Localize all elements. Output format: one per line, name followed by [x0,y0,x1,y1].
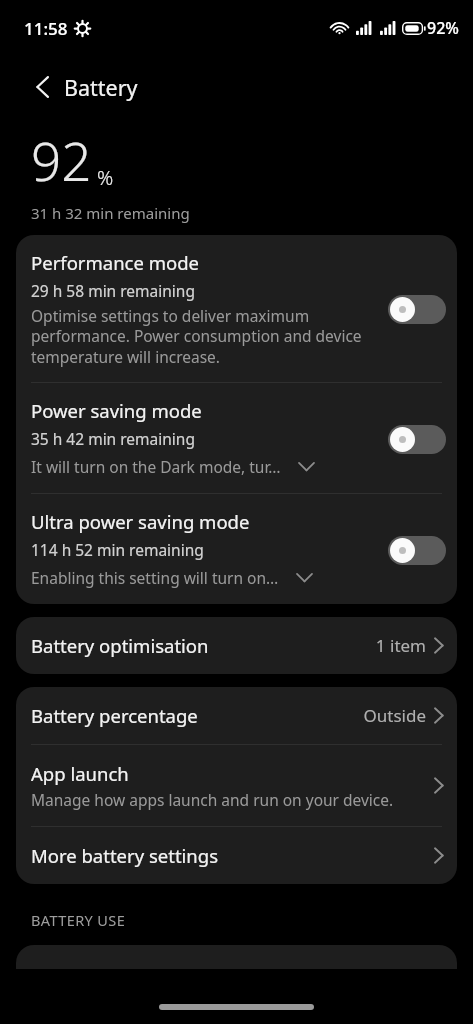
staticText: 92% [427,17,459,39]
staticText: 35 h 42 min remaining [31,428,195,449]
button[interactable]: Expand [293,453,319,479]
staticText: BATTERY USE [31,910,126,930]
staticText: Enabling this setting will turn on… [31,567,279,588]
staticText: 114 h 52 min remaining [31,539,204,560]
button[interactable]: More battery settings [16,827,457,884]
button[interactable]: Expand [291,564,317,590]
staticText: Performance mode [31,250,199,275]
staticText: 29 h 58 min remaining [31,280,195,301]
button[interactable]: Battery optimisation [16,617,457,674]
button[interactable]: Ultra power saving mode [16,494,457,604]
staticText: Manage how apps launch and run on your d… [31,789,409,810]
staticText: % [97,164,114,191]
button[interactable]: Toggle [388,292,446,326]
staticText: It will turn on the Dark mode, tur… [31,456,281,477]
staticText: Battery [64,73,138,102]
staticText: 31 h 32 min remaining [31,203,190,223]
button[interactable]: Battery percentage [16,687,457,744]
staticText: 92 [31,124,92,196]
staticText: App launch [31,761,129,786]
staticText: Battery percentage [31,703,198,728]
button[interactable]: Back [22,67,62,107]
staticText: Outside [363,704,426,727]
button[interactable]: Performance mode [16,235,457,382]
button[interactable]: Power saving mode [16,383,457,493]
button[interactable]: Toggle [388,422,446,456]
button[interactable]: App launch [16,745,457,826]
staticText: Ultra power saving mode [31,509,250,534]
staticText: More battery settings [31,843,219,868]
staticText: Power saving mode [31,398,202,423]
staticText: 11:58 [24,17,68,40]
staticText: Optimise settings to deliver maximum per… [31,305,377,368]
staticText: 1 item [375,634,426,657]
button[interactable]: Toggle [388,533,446,567]
staticText: Battery optimisation [31,633,209,658]
